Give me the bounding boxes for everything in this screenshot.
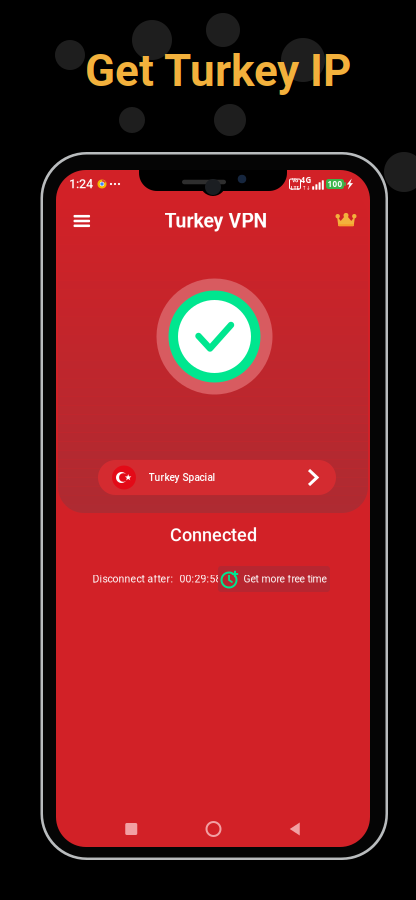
button[interactable]: Connected, tap to disconnect xyxy=(155,277,273,395)
button[interactable]: Turkey Spacial xyxy=(98,460,336,495)
staticText: 100 xyxy=(327,179,342,189)
staticText: 4G xyxy=(300,175,311,185)
staticText: Get Turkey IP xyxy=(85,45,351,97)
staticText: Vo xyxy=(292,177,298,184)
button[interactable]: Premium xyxy=(330,204,362,236)
staticText: Get more free time xyxy=(243,573,326,585)
staticText: ↑↓ xyxy=(302,185,310,191)
staticText: LTE xyxy=(290,184,299,191)
staticText: Turkey Spacial xyxy=(148,472,215,483)
staticText: Connected xyxy=(170,524,257,546)
staticText: Turkey VPN xyxy=(164,210,267,232)
button[interactable]: Get more free time xyxy=(218,566,330,592)
button[interactable]: Menu xyxy=(65,204,99,238)
staticText: 1:24 xyxy=(69,177,93,191)
staticText: Disconnect after: 00:29:58 xyxy=(92,573,221,585)
